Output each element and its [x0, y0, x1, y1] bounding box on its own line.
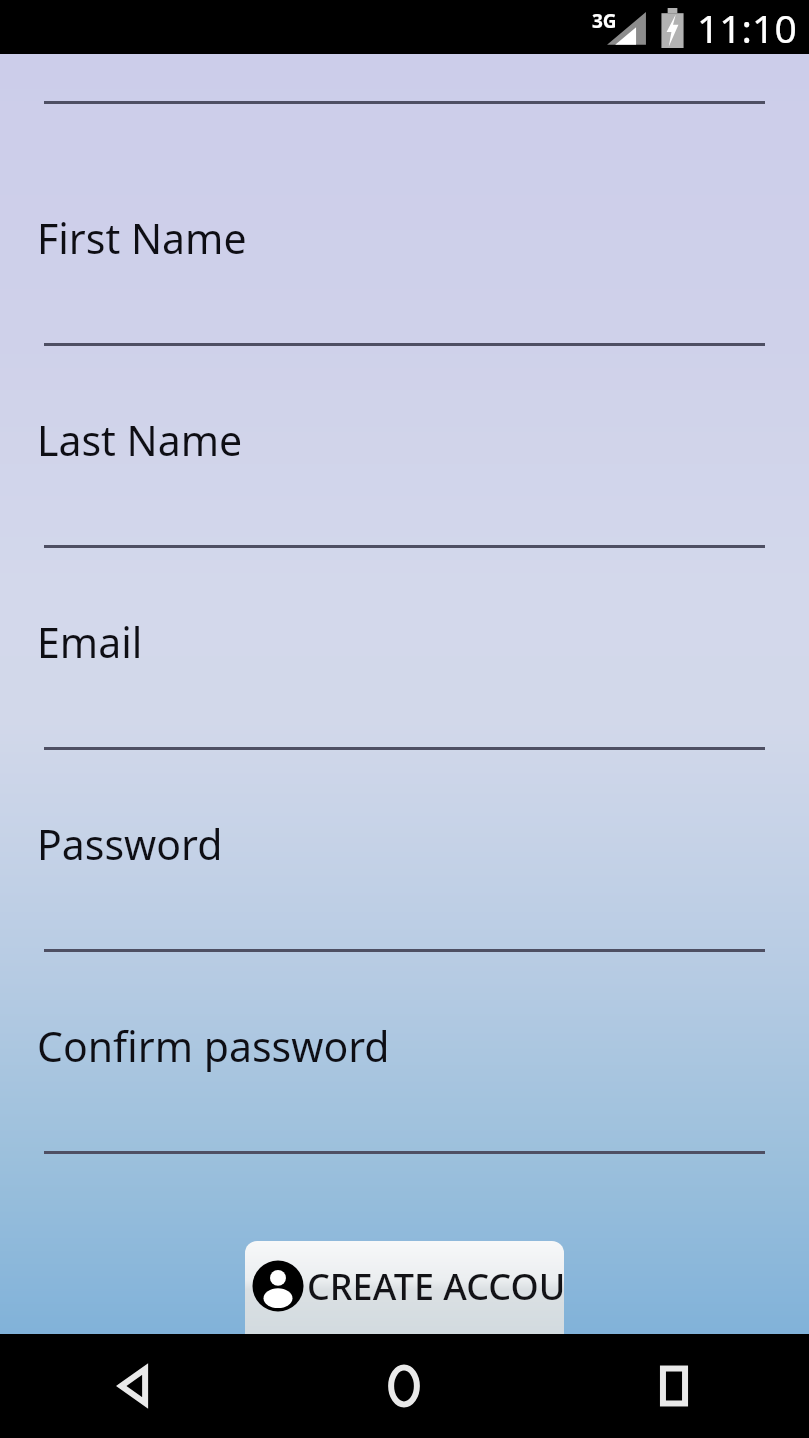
button[interactable]: Home — [269, 1334, 539, 1438]
button[interactable]: Password — [44, 748, 765, 950]
staticText: First Name — [37, 210, 247, 266]
button[interactable]: Back — [0, 1334, 269, 1438]
staticText: 3G — [592, 8, 617, 34]
button[interactable]: Last Name — [44, 344, 765, 546]
staticText: 11:10 — [697, 1, 797, 54]
button[interactable]: First Name — [44, 102, 765, 344]
staticText: Confirm password — [37, 1018, 390, 1074]
button[interactable]: Email — [44, 546, 765, 748]
button[interactable]: Recent apps — [539, 1334, 809, 1438]
staticText: Email — [37, 614, 143, 670]
staticText: Password — [37, 816, 223, 872]
staticText: Last Name — [37, 412, 243, 468]
staticText: CREATE ACCOUNT — [307, 1262, 564, 1311]
button[interactable]: CREATE ACCOUNT — [245, 1241, 564, 1338]
button[interactable]: Confirm password — [44, 950, 765, 1152]
